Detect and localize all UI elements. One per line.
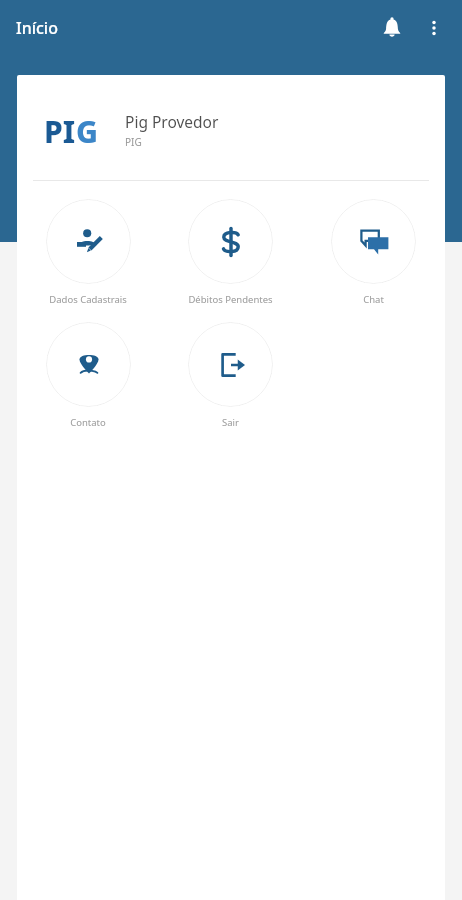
staticText: Contato [70, 416, 106, 429]
button[interactable]: More options [414, 8, 454, 48]
button[interactable]: Contato [17, 320, 159, 431]
button[interactable]: Sair [159, 320, 302, 431]
button[interactable]: Notifications [370, 6, 414, 50]
staticText: Pig Provedor [125, 111, 219, 132]
staticText: Dados Cadastrais [49, 293, 127, 306]
staticText: Sair [222, 416, 239, 429]
button[interactable]: Débitos Pendentes [159, 197, 302, 308]
staticText: Chat [363, 293, 384, 306]
staticText: Início [16, 17, 58, 39]
button[interactable]: Dados Cadastrais [17, 197, 159, 308]
staticText: G [76, 111, 98, 145]
staticText: PIG [125, 135, 142, 149]
staticText: PI [44, 111, 76, 145]
staticText: Débitos Pendentes [188, 293, 273, 306]
button[interactable]: Chat [302, 197, 445, 308]
